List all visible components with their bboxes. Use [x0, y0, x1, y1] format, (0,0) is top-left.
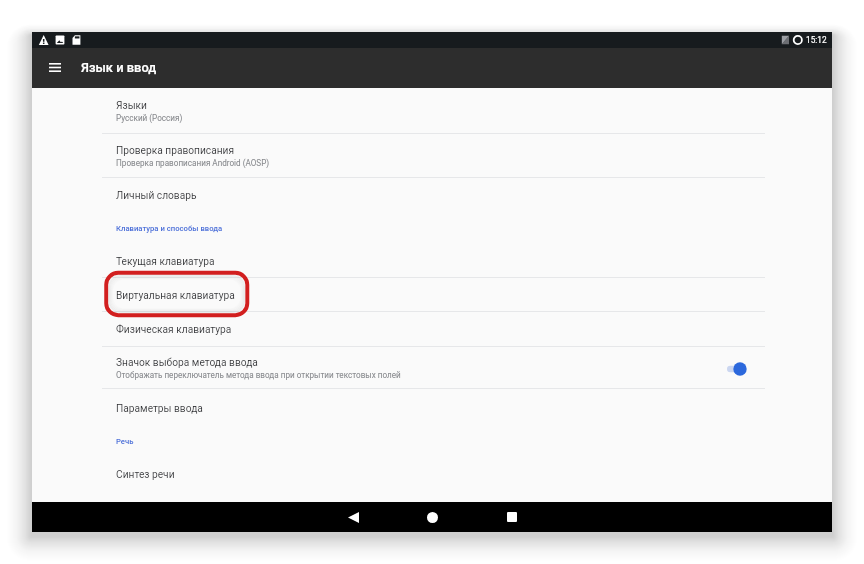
staticText: Отображать переключатель метода ввода пр… [116, 370, 401, 380]
button[interactable]: Back [340, 504, 366, 530]
staticText: Личный словарь [116, 190, 197, 202]
button[interactable]: Текущая клавиатура [32, 244, 832, 277]
button[interactable]: Home [419, 504, 445, 530]
staticText: Виртуальная клавиатура [116, 290, 235, 302]
staticText: Параметры ввода [116, 403, 203, 415]
button[interactable]: Языки [32, 88, 832, 133]
staticText: Значок выбора метода ввода [116, 357, 258, 369]
button[interactable]: Физическая клавиатура [32, 312, 832, 346]
staticText: Проверка правописания Android (AOSP) [116, 158, 270, 168]
button[interactable]: Проверка правописания [32, 134, 832, 177]
staticText: 15:12 [806, 35, 827, 45]
staticText: Русский (Россия) [116, 113, 183, 123]
staticText: Языки [116, 100, 147, 112]
button[interactable]: Значок выбора метода ввода [32, 347, 832, 388]
staticText: Язык и ввод [81, 60, 157, 75]
button[interactable]: Синтез речи [32, 456, 832, 492]
button[interactable]: Recent apps [499, 504, 525, 530]
button[interactable]: Open navigation drawer [43, 55, 67, 79]
button[interactable]: Параметры ввода [32, 389, 832, 426]
staticText: Синтез речи [116, 469, 175, 481]
button[interactable]: Виртуальная клавиатура [32, 278, 832, 311]
staticText: Физическая клавиатура [116, 324, 232, 336]
button[interactable]: Личный словарь [32, 178, 832, 212]
staticText: Проверка правописания [116, 145, 235, 157]
staticText: Клавиатура и способы ввода [116, 224, 223, 233]
staticText: Речь [116, 437, 134, 446]
staticText: Текущая клавиатура [116, 256, 215, 268]
